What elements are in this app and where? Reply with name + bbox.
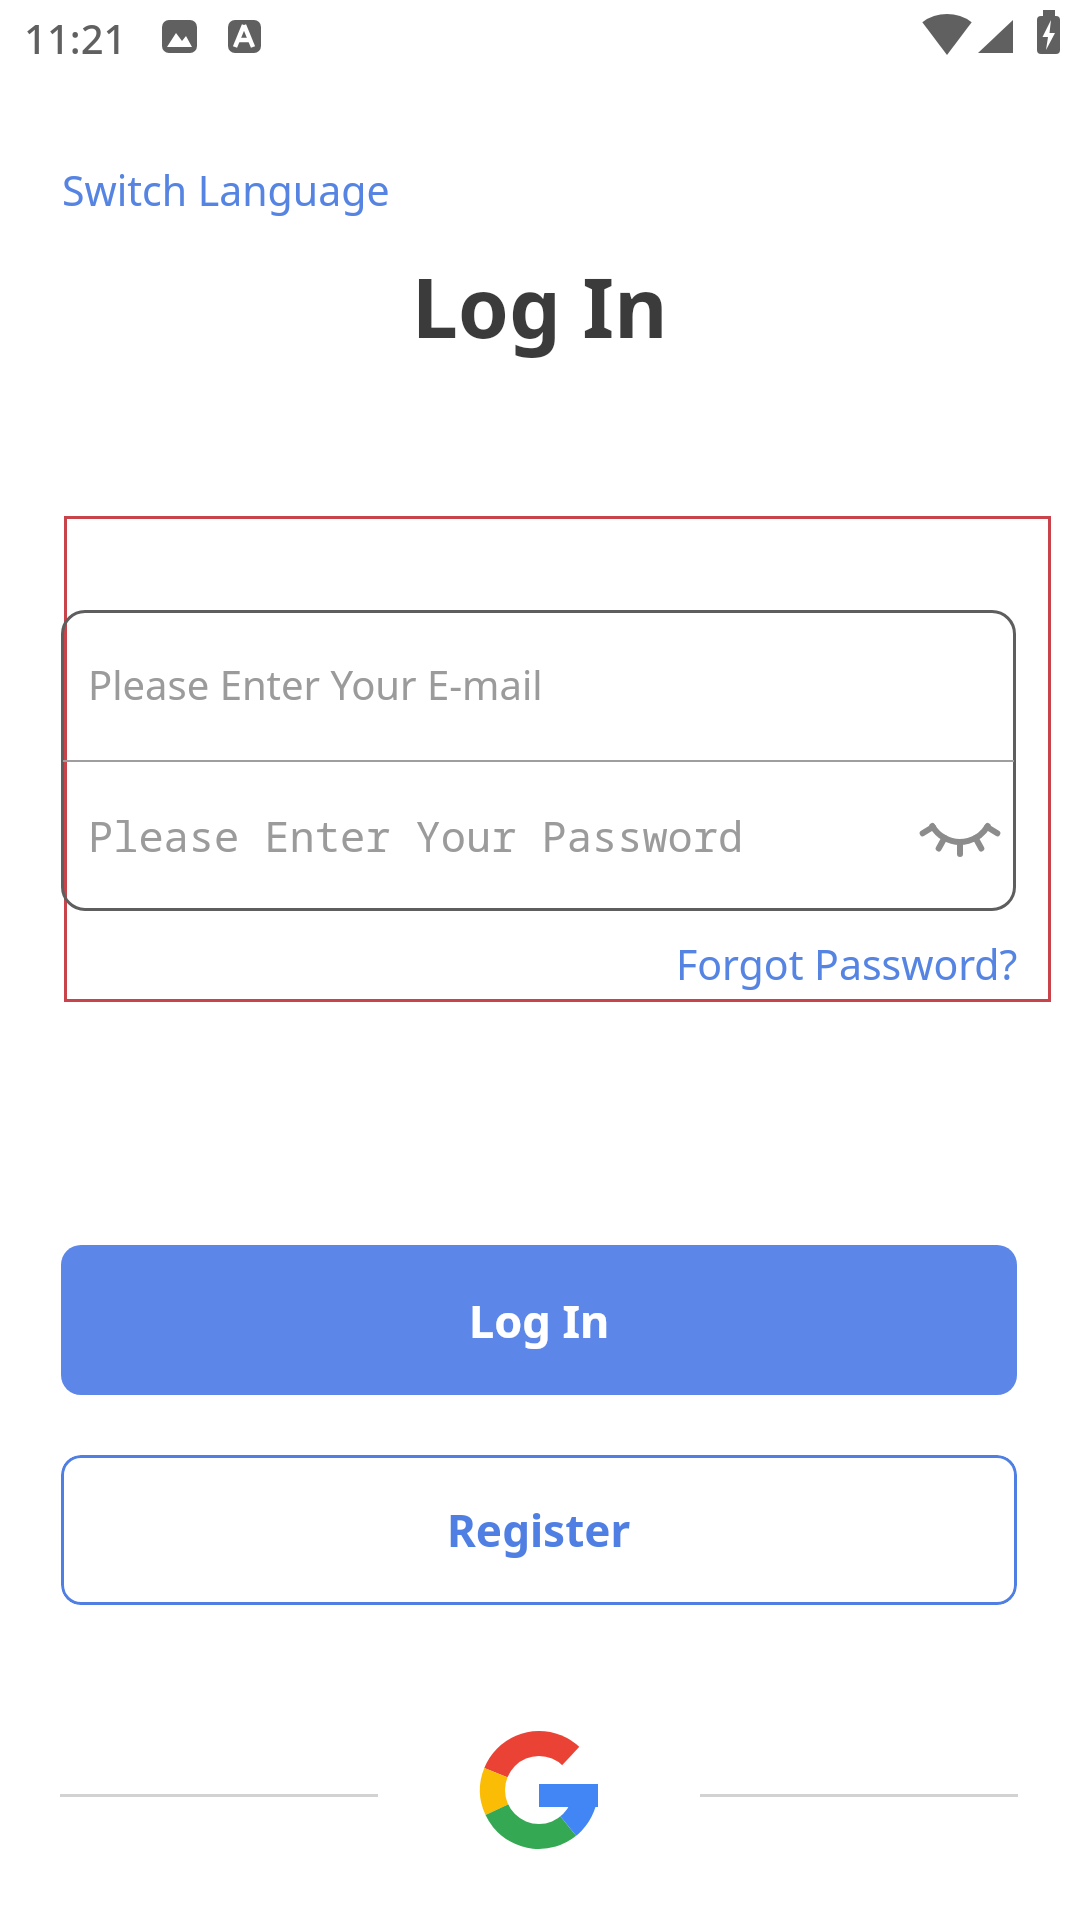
button[interactable]: Forgot Password?	[676, 936, 1018, 992]
button[interactable]: Please Enter Your E-mail	[88, 657, 543, 711]
staticText: Switch Language	[62, 162, 390, 218]
staticText: Log In	[469, 1290, 610, 1351]
button[interactable]	[922, 800, 998, 860]
button[interactable]: Switch Language	[62, 162, 390, 218]
staticText: Please Enter Your Password	[88, 807, 744, 864]
button[interactable]: Log In	[61, 1245, 1017, 1395]
staticText: 11:21	[24, 11, 127, 65]
staticText: Please Enter Your E-mail	[88, 657, 543, 711]
staticText: Register	[447, 1500, 631, 1560]
staticText: Forgot Password?	[676, 936, 1018, 992]
staticText: Log In	[412, 250, 668, 362]
button[interactable]: Register	[61, 1455, 1017, 1605]
button[interactable]	[480, 1731, 598, 1849]
button[interactable]: Please Enter Your Password	[88, 807, 744, 864]
